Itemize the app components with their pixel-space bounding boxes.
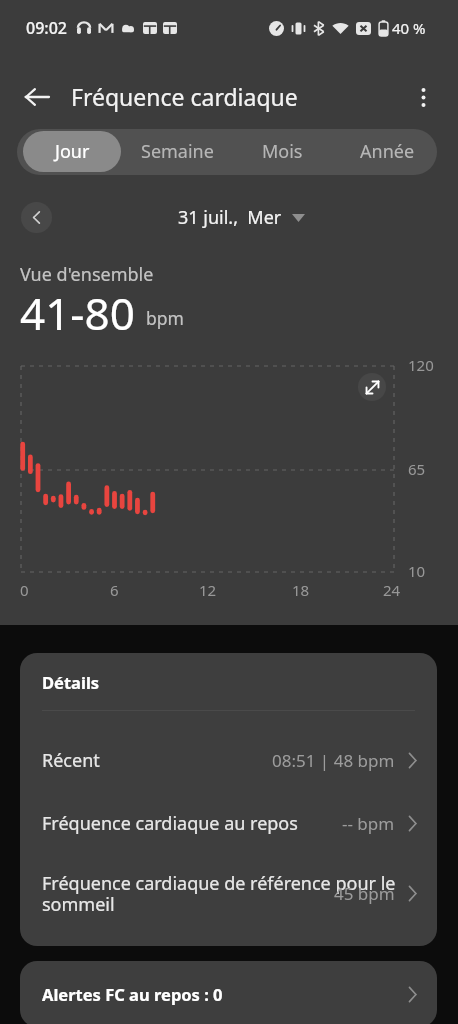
button[interactable]: More options xyxy=(401,75,445,119)
staticText: 65 xyxy=(408,459,426,479)
button[interactable]: Back xyxy=(15,75,59,119)
button[interactable]: Semaine xyxy=(128,131,226,172)
button[interactable]: Jour xyxy=(23,131,121,172)
staticText: Vue d'ensemble xyxy=(20,262,154,287)
staticText: Mois xyxy=(262,139,303,164)
staticText: Récent xyxy=(42,748,100,773)
button[interactable]: 31 juil., Mer xyxy=(178,205,305,230)
staticText: 10 xyxy=(408,561,426,581)
staticText: Détails xyxy=(42,671,100,693)
staticText: Année xyxy=(360,139,415,164)
button[interactable]: Previous day xyxy=(21,202,52,233)
staticText: Fréquence cardiaque au repos xyxy=(42,811,298,836)
staticText: 45 bpm xyxy=(334,882,395,905)
staticText: 40 % xyxy=(392,18,426,38)
staticText: Alertes FC au repos : 0 xyxy=(42,983,223,1005)
staticText: 0 xyxy=(20,580,29,600)
staticText: 24 xyxy=(383,580,401,600)
staticText: 120 xyxy=(408,355,434,375)
button[interactable]: Récent xyxy=(20,729,437,792)
button[interactable]: Mois xyxy=(233,131,331,172)
staticText: Jour xyxy=(55,139,90,164)
staticText: -- bpm xyxy=(342,812,395,835)
staticText: 6 xyxy=(110,580,119,600)
staticText: 41-80 xyxy=(20,283,135,343)
staticText: 08:51 | 48 bpm xyxy=(272,749,395,772)
button[interactable]: Fréquence cardiaque de référence pour le… xyxy=(20,855,437,932)
staticText: 31 juil., Mer xyxy=(178,205,282,230)
button[interactable]: Alertes FC au repos : 0 xyxy=(20,961,437,1024)
button[interactable]: Année xyxy=(338,131,436,172)
staticText: bpm xyxy=(146,306,184,330)
button[interactable]: Fréquence cardiaque au repos xyxy=(20,792,437,855)
staticText: 18 xyxy=(292,580,310,600)
staticText: Semaine xyxy=(141,139,214,164)
staticText: Fréquence cardiaque de référence pour le… xyxy=(42,871,396,917)
staticText: Fréquence cardiaque xyxy=(71,81,298,112)
staticText: 12 xyxy=(199,580,217,600)
staticText: 09:02 xyxy=(26,17,67,39)
button[interactable]: Expand chart xyxy=(358,373,386,401)
